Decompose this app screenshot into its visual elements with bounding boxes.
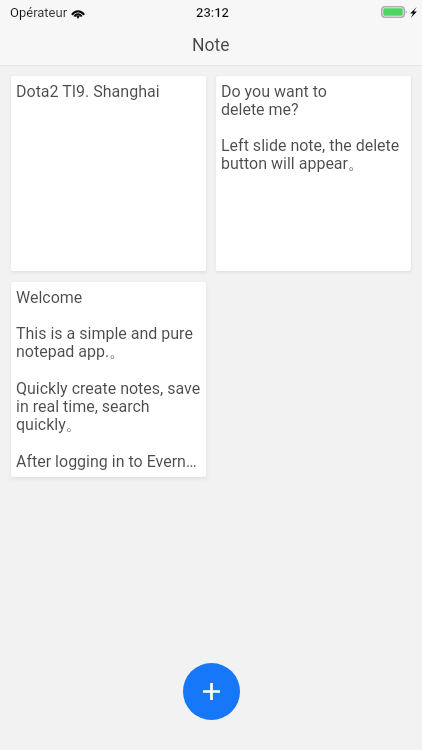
button[interactable]: Welcome This is a simple and pure notepa… [11, 282, 206, 477]
button[interactable]: Do you want to delete me? Left slide not… [216, 76, 411, 271]
staticText: Note [192, 35, 230, 56]
staticText: Do you want to delete me? Left slide not… [221, 82, 408, 174]
button[interactable]: Dota2 TI9. Shanghai [11, 76, 206, 271]
button[interactable]: Add note [183, 663, 240, 720]
staticText: Welcome This is a simple and pure notepa… [16, 288, 203, 471]
staticText: Opérateur [10, 5, 68, 20]
staticText: Dota2 TI9. Shanghai [16, 82, 203, 101]
staticText: 23:12 [196, 5, 230, 20]
